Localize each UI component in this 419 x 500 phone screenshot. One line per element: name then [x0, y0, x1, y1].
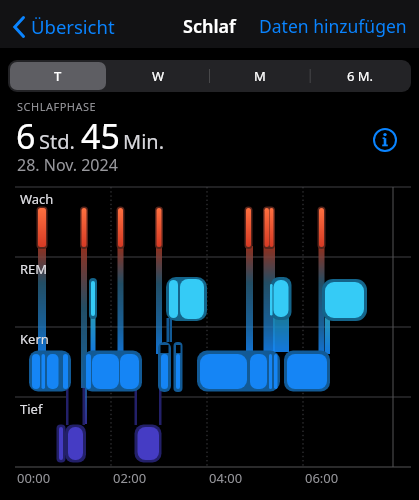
- button[interactable]: Übersicht: [13, 14, 115, 39]
- staticText: W: [152, 67, 165, 85]
- staticText: SCHLAFPHASE: [17, 99, 97, 114]
- staticText: Schlaf: [183, 14, 236, 39]
- staticText: M: [254, 67, 266, 85]
- staticText: 45: [81, 113, 120, 159]
- staticText: Std.: [39, 128, 75, 155]
- staticText: Min.: [123, 128, 165, 155]
- staticText: 6: [16, 113, 36, 159]
- staticText: T: [54, 67, 62, 85]
- button[interactable]: W: [110, 62, 207, 90]
- staticText: Wach: [20, 190, 54, 208]
- staticText: 04:00: [209, 469, 243, 487]
- staticText: Tief: [20, 400, 43, 418]
- staticText: Übersicht: [31, 14, 115, 39]
- button[interactable]: 6 M.: [312, 62, 409, 90]
- staticText: REM: [20, 260, 48, 278]
- staticText: 6 M.: [347, 67, 374, 85]
- button[interactable]: [372, 127, 398, 153]
- staticText: 00:00: [17, 469, 51, 487]
- button[interactable]: Daten hinzufügen: [259, 14, 407, 38]
- staticText: Kern: [20, 330, 49, 348]
- button[interactable]: M: [211, 62, 308, 90]
- staticText: 02:00: [113, 469, 147, 487]
- button[interactable]: T: [10, 62, 106, 90]
- staticText: 06:00: [305, 469, 339, 487]
- staticText: 28. Nov. 2024: [17, 154, 118, 176]
